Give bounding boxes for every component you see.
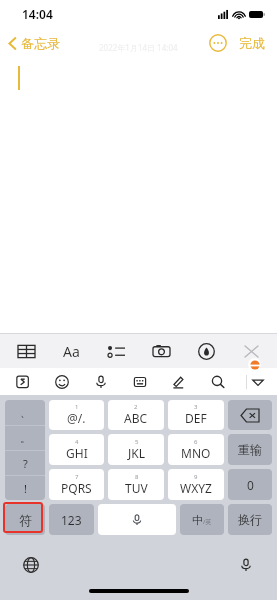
staticText: 8 bbox=[135, 473, 139, 481]
button[interactable]: 备忘录 bbox=[0, 35, 68, 51]
staticText: 2 bbox=[134, 403, 138, 411]
staticText: GHI bbox=[66, 445, 88, 461]
button[interactable]: Camera bbox=[149, 339, 173, 363]
button[interactable]: Handwriting bbox=[168, 371, 190, 393]
button[interactable]: ? bbox=[5, 451, 45, 475]
button[interactable]: 1 bbox=[49, 400, 104, 430]
staticText: 123 bbox=[61, 512, 82, 528]
staticText: 符 bbox=[19, 512, 32, 528]
staticText: 14:04 bbox=[22, 6, 53, 22]
button[interactable]: Draw bbox=[194, 339, 218, 363]
button[interactable]: 2 bbox=[108, 400, 164, 430]
staticText: 9 bbox=[194, 473, 198, 481]
button[interactable]: Text format bbox=[59, 339, 83, 363]
staticText: 0 bbox=[247, 477, 254, 493]
button[interactable]: 换行 bbox=[228, 504, 272, 535]
staticText: TUV bbox=[125, 480, 148, 496]
staticText: 1 bbox=[75, 403, 79, 411]
button[interactable]: 6 bbox=[168, 434, 224, 465]
staticText: JKL bbox=[128, 445, 145, 461]
staticText: 7 bbox=[75, 473, 79, 481]
staticText: 。 bbox=[20, 431, 31, 445]
button[interactable]: Close keyboard bbox=[239, 339, 263, 363]
button[interactable]: 8 bbox=[108, 469, 164, 500]
staticText: @/. bbox=[67, 410, 86, 426]
staticText: ? bbox=[23, 456, 28, 471]
button[interactable]: 。 bbox=[5, 426, 45, 450]
button[interactable]: Space, voice input bbox=[98, 504, 176, 535]
button[interactable]: 123 bbox=[49, 504, 94, 535]
button[interactable]: 3 bbox=[168, 400, 224, 430]
button[interactable]: Checklist bbox=[104, 339, 128, 363]
staticText: 6 bbox=[194, 438, 198, 446]
staticText: WXYZ bbox=[180, 480, 212, 496]
button[interactable]: Voice input bbox=[90, 371, 112, 393]
button[interactable]: 、 bbox=[5, 400, 45, 425]
button[interactable]: Voice input bbox=[235, 554, 257, 576]
staticText: PQRS bbox=[61, 480, 92, 496]
button[interactable]: Delete bbox=[228, 400, 272, 430]
staticText: 5 bbox=[135, 438, 139, 446]
staticText: /英 bbox=[203, 518, 212, 526]
staticText: 4 bbox=[75, 438, 79, 446]
staticText: 换行 bbox=[238, 512, 262, 527]
staticText: 备忘录 bbox=[21, 35, 60, 51]
staticText: ABC bbox=[124, 410, 148, 426]
staticText: 2022年1月14日 14:04 bbox=[99, 42, 178, 53]
button[interactable]: Search bbox=[207, 371, 229, 393]
button[interactable]: 中 bbox=[180, 504, 224, 535]
button[interactable]: 5 bbox=[108, 434, 164, 465]
button[interactable]: 完成 bbox=[237, 31, 267, 55]
button[interactable]: Sogou bbox=[12, 371, 34, 393]
staticText: Aa bbox=[63, 342, 80, 361]
staticText: 中 bbox=[192, 513, 203, 527]
staticText: DEF bbox=[185, 410, 207, 426]
staticText: MNO bbox=[181, 445, 211, 461]
button[interactable]: 7 bbox=[49, 469, 104, 500]
staticText: 3 bbox=[194, 403, 198, 411]
staticText: 、 bbox=[20, 406, 31, 420]
button[interactable]: Keyboard settings bbox=[129, 371, 151, 393]
staticText: 完成 bbox=[239, 35, 265, 51]
button[interactable]: ! bbox=[5, 476, 45, 500]
button[interactable]: Table bbox=[14, 339, 38, 363]
button[interactable]: 重输 bbox=[228, 434, 272, 465]
button[interactable]: More options bbox=[209, 34, 227, 52]
button[interactable]: Collapse bbox=[247, 371, 269, 393]
staticText: ! bbox=[24, 481, 27, 496]
button[interactable]: Emoji bbox=[51, 371, 73, 393]
button[interactable]: Switch language bbox=[20, 554, 42, 576]
button[interactable]: 4 bbox=[49, 434, 104, 465]
button[interactable]: 0 bbox=[228, 469, 272, 500]
button[interactable]: 符 bbox=[5, 504, 45, 535]
staticText: 重输 bbox=[238, 442, 262, 457]
button[interactable]: 9 bbox=[168, 469, 224, 500]
